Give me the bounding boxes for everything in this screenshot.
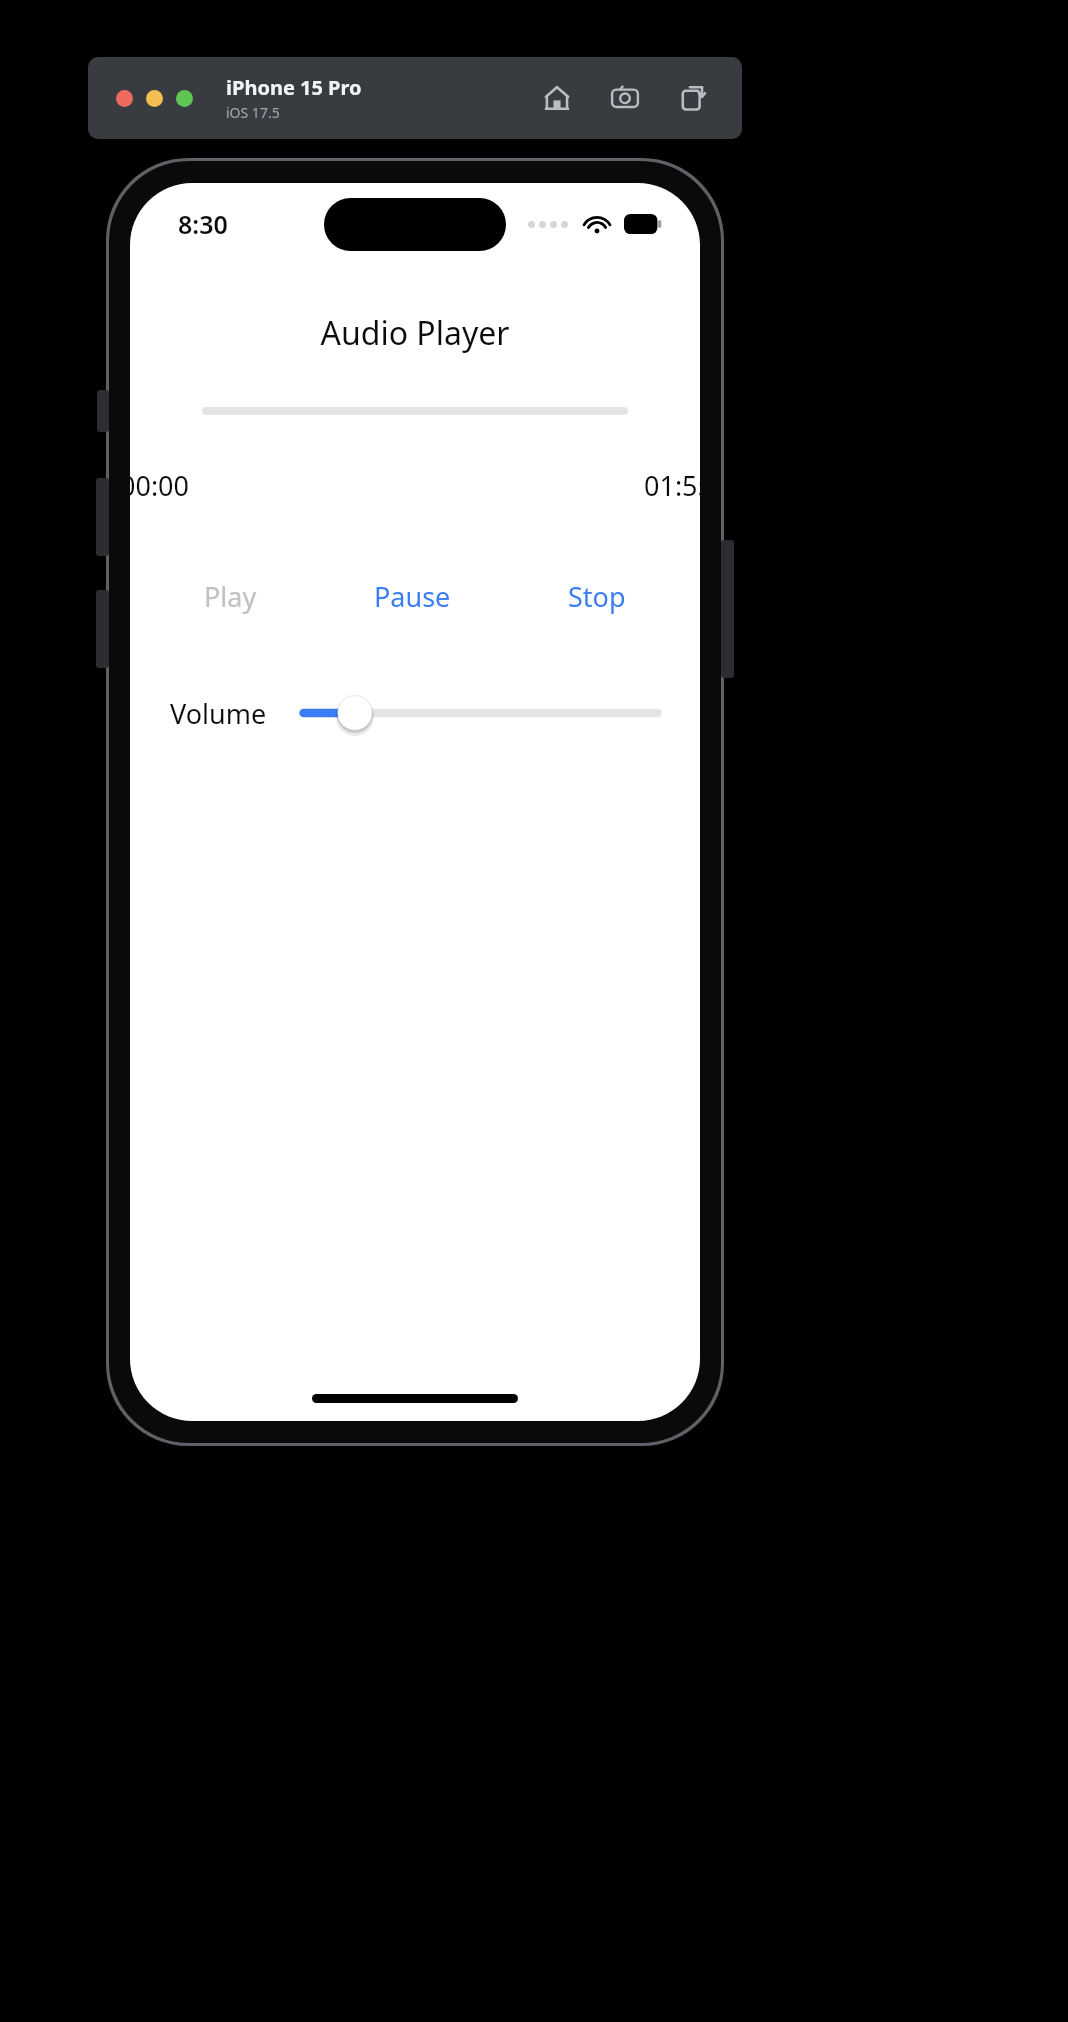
- staticText: 00:00: [130, 467, 190, 504]
- button[interactable]: Minimize: [146, 90, 163, 107]
- button[interactable]: Screenshot: [602, 75, 648, 121]
- staticText: Play: [204, 578, 257, 615]
- staticText: Volume: [170, 695, 267, 732]
- button[interactable]: Home: [534, 75, 580, 121]
- staticText: 8:30: [178, 207, 228, 241]
- staticText: iPhone 15 Pro: [226, 74, 362, 101]
- staticText: 01:55: [644, 467, 700, 504]
- staticText: Stop: [568, 578, 626, 615]
- button[interactable]: Stop: [558, 570, 636, 623]
- button[interactable]: Maximize: [176, 90, 193, 107]
- button[interactable]: Rotate: [670, 75, 716, 121]
- staticText: iOS 17.5: [226, 103, 280, 122]
- staticText: Audio Player: [130, 311, 700, 355]
- button[interactable]: Pause: [364, 570, 461, 623]
- button[interactable]: Play: [194, 570, 267, 623]
- button[interactable]: Close: [116, 90, 133, 107]
- staticText: Pause: [374, 578, 451, 615]
- button[interactable]: Volume slider: [301, 685, 660, 741]
